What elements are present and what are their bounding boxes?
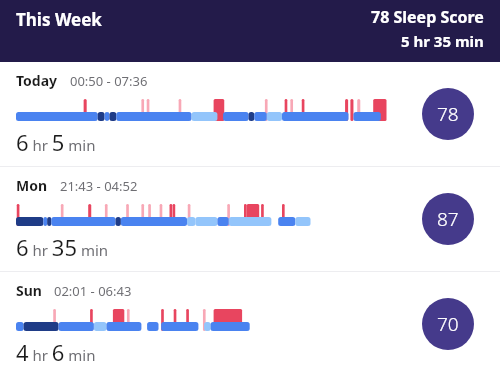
staticText: 00:50 - 07:36 (70, 72, 148, 90)
staticText: Sun (16, 281, 42, 300)
staticText: 78 (437, 101, 459, 127)
staticText: 6 hr 35 min (16, 232, 109, 262)
button[interactable]: Today (0, 62, 500, 166)
button[interactable]: 70 (422, 298, 474, 350)
staticText: 70 (437, 311, 459, 337)
staticText: 5 hr 35 min (401, 31, 484, 51)
staticText: This Week (16, 8, 102, 31)
staticText: 6 hr 5 min (16, 127, 96, 157)
staticText: 78 Sleep Score (371, 6, 484, 28)
staticText: 4 hr 6 min (16, 337, 96, 367)
staticText: 87 (437, 206, 459, 232)
button[interactable]: 87 (422, 193, 474, 245)
staticText: Mon (16, 176, 48, 195)
button[interactable]: This Week (0, 0, 500, 62)
button[interactable]: 78 (422, 88, 474, 140)
button[interactable]: Mon (0, 167, 500, 271)
button[interactable]: Sun (0, 272, 500, 375)
staticText: Today (16, 71, 58, 90)
staticText: 02:01 - 06:43 (54, 282, 132, 300)
staticText: 21:43 - 04:52 (60, 177, 138, 195)
